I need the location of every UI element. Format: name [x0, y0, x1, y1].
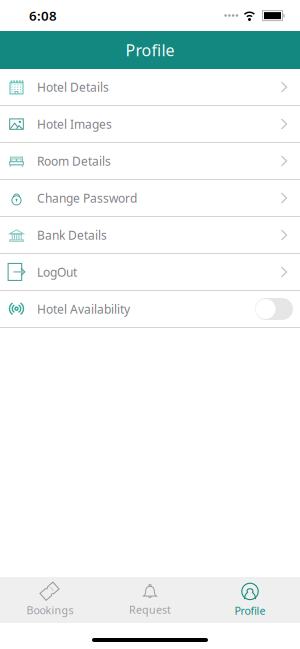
button[interactable]: Bookings: [0, 583, 100, 617]
staticText: Hotel Availability: [37, 301, 130, 317]
button[interactable]: Request: [100, 583, 200, 617]
staticText: Hotel Images: [37, 116, 112, 132]
staticText: Request: [129, 602, 171, 617]
staticText: Bank Details: [37, 227, 107, 243]
button[interactable]: Bank Details: [0, 217, 300, 254]
staticText: 6:08: [29, 7, 57, 24]
staticText: Profile: [125, 39, 174, 61]
staticText: Profile: [234, 603, 265, 618]
staticText: Hotel Details: [37, 79, 109, 95]
button[interactable]: Profile: [200, 582, 300, 618]
staticText: LogOut: [37, 264, 77, 280]
button[interactable]: LogOut: [0, 254, 300, 291]
staticText: Change Password: [37, 190, 137, 206]
staticText: Bookings: [26, 603, 73, 617]
button[interactable]: Hotel Availability: [0, 291, 300, 328]
staticText: Room Details: [37, 153, 111, 169]
button[interactable]: Hotel Details: [0, 69, 300, 106]
button[interactable]: Hotel Images: [0, 106, 300, 143]
button[interactable]: Change Password: [0, 180, 300, 217]
button[interactable]: Room Details: [0, 143, 300, 180]
